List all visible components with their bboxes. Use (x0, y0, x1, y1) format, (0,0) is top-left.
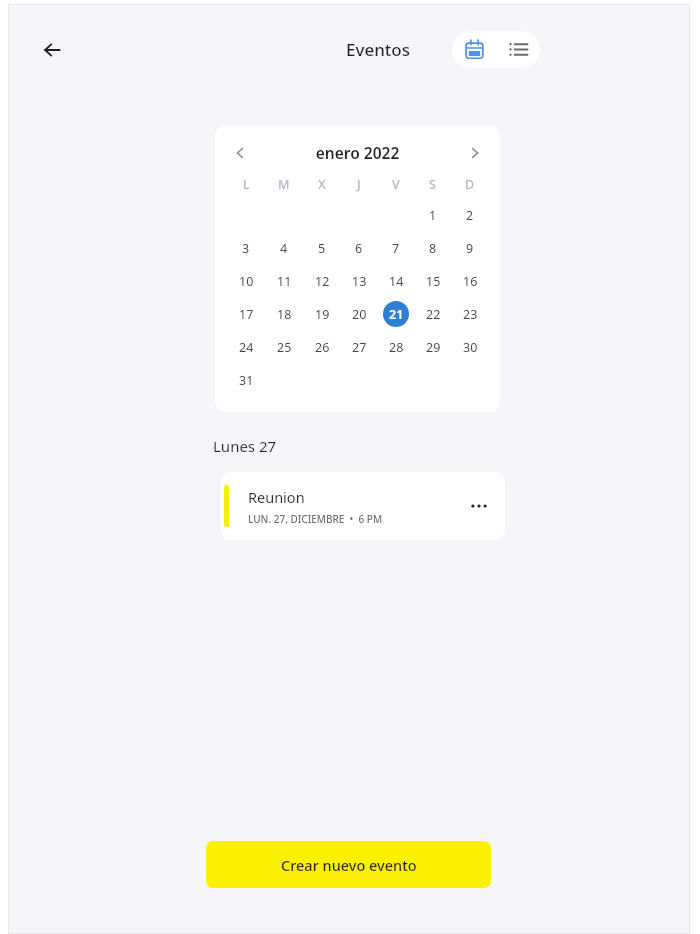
staticText: 15 (426, 273, 441, 290)
button[interactable]: 23 (457, 301, 483, 327)
button[interactable]: 6 (346, 235, 372, 261)
staticText: 24 (239, 339, 254, 356)
button[interactable]: 13 (346, 268, 372, 294)
staticText: 20 (352, 306, 367, 323)
staticText: 30 (463, 339, 478, 356)
button[interactable]: 20 (346, 301, 372, 327)
staticText: 23 (463, 306, 478, 323)
button[interactable]: 21 (383, 301, 409, 327)
staticText: 2 (466, 207, 474, 224)
button[interactable]: 12 (309, 268, 335, 294)
button[interactable]: 7 (383, 235, 409, 261)
staticText: Eventos (346, 38, 411, 61)
staticText: 5 (318, 240, 326, 257)
button[interactable]: 22 (420, 301, 446, 327)
staticText: 13 (352, 273, 367, 290)
button[interactable]: List view (496, 31, 540, 68)
button[interactable]: 31 (233, 367, 259, 393)
button[interactable]: 14 (383, 268, 409, 294)
staticText: 8 (429, 240, 437, 257)
staticText: 16 (463, 273, 478, 290)
button[interactable]: 2 (457, 202, 483, 228)
staticText: X (318, 176, 326, 193)
staticText: 7 (392, 240, 400, 257)
staticText: 28 (389, 339, 404, 356)
button[interactable]: 19 (309, 301, 335, 327)
button[interactable]: Next month (462, 140, 488, 166)
button[interactable]: 11 (271, 268, 297, 294)
staticText: J (357, 176, 361, 193)
staticText: 3 (242, 240, 250, 257)
button[interactable]: 27 (346, 334, 372, 360)
staticText: 6 (355, 240, 363, 257)
staticText: 22 (426, 306, 441, 323)
button[interactable]: 24 (233, 334, 259, 360)
staticText: 11 (277, 273, 292, 290)
button[interactable]: 29 (420, 334, 446, 360)
staticText: 27 (352, 339, 367, 356)
button[interactable]: 26 (309, 334, 335, 360)
staticText: enero 2022 (253, 142, 462, 163)
staticText: S (429, 176, 436, 193)
staticText: 17 (239, 306, 254, 323)
staticText: 25 (277, 339, 292, 356)
button[interactable]: 25 (271, 334, 297, 360)
button[interactable]: Previous month (227, 140, 253, 166)
button[interactable]: 17 (233, 301, 259, 327)
button[interactable]: Reunion (221, 472, 505, 540)
button[interactable]: 30 (457, 334, 483, 360)
button[interactable]: More options (461, 488, 497, 524)
staticText: 10 (239, 273, 254, 290)
staticText: M (278, 176, 290, 193)
button[interactable]: 28 (383, 334, 409, 360)
button[interactable]: Crear nuevo evento (206, 841, 491, 888)
staticText: 14 (389, 273, 404, 290)
button[interactable]: 15 (420, 268, 446, 294)
staticText: 19 (315, 306, 330, 323)
staticText: V (392, 176, 400, 193)
staticText: 31 (239, 372, 254, 389)
staticText: Reunion (248, 487, 305, 507)
button[interactable]: 4 (271, 235, 297, 261)
staticText: 4 (280, 240, 288, 257)
staticText: D (465, 176, 475, 193)
button[interactable]: 5 (309, 235, 335, 261)
button[interactable]: 3 (233, 235, 259, 261)
button[interactable]: 10 (233, 268, 259, 294)
staticText: 12 (315, 273, 330, 290)
button[interactable]: 8 (420, 235, 446, 261)
staticText: 18 (277, 306, 292, 323)
staticText: LUN. 27, DICIEMBRE • 6 PM (248, 512, 383, 526)
staticText: 21 (389, 306, 404, 323)
staticText: 26 (315, 339, 330, 356)
button[interactable]: Back (30, 28, 74, 72)
button[interactable]: 9 (457, 235, 483, 261)
button[interactable]: 16 (457, 268, 483, 294)
staticText: 29 (426, 339, 441, 356)
button[interactable]: 18 (271, 301, 297, 327)
staticText: 1 (429, 207, 437, 224)
button[interactable]: Calendar view (452, 31, 496, 68)
staticText: Lunes 27 (213, 436, 277, 456)
staticText: 9 (466, 240, 474, 257)
staticText: L (243, 176, 250, 193)
staticText: Crear nuevo evento (281, 855, 417, 875)
button[interactable]: 1 (420, 202, 446, 228)
